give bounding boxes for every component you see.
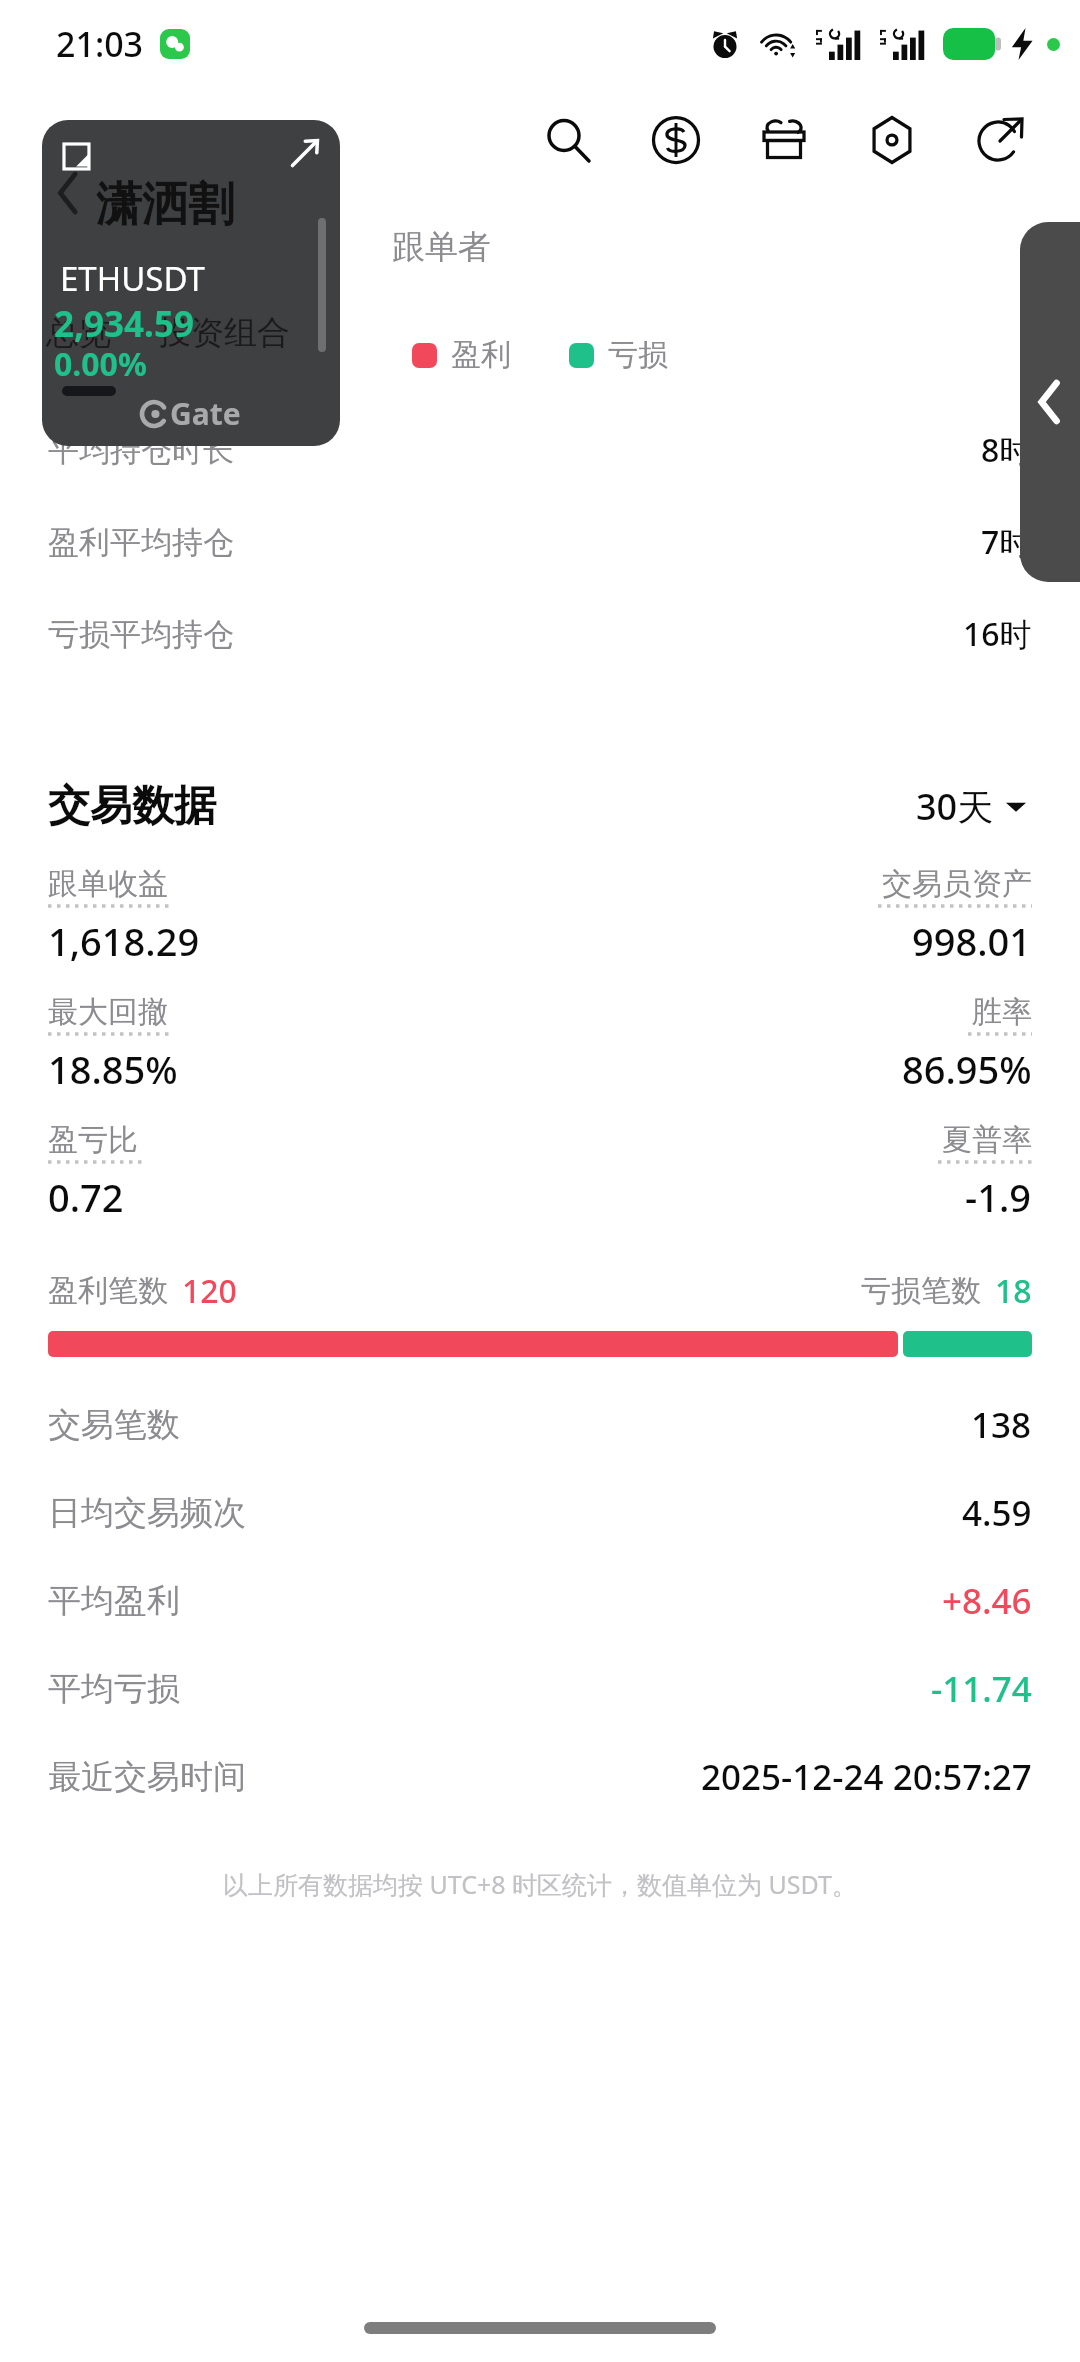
button[interactable]: 盈亏比: [48, 1121, 540, 1223]
staticText: 120: [182, 1269, 237, 1313]
staticText: +8.46: [942, 1577, 1032, 1625]
staticText: 8时: [981, 428, 1032, 472]
button[interactable]: Search: [514, 88, 622, 192]
staticText: 交易笔数: [48, 1404, 180, 1446]
staticText: 平均持仓时长: [48, 431, 234, 470]
staticText: 1,618.29: [48, 915, 200, 967]
button[interactable]: Share: [946, 88, 1054, 192]
staticText: 最近交易时间: [48, 1756, 246, 1798]
staticText: 日均交易频次: [48, 1492, 246, 1534]
staticText: 2025-12-24 20:57:27: [701, 1753, 1032, 1801]
button[interactable]: 交易员资产: [540, 865, 1032, 967]
staticText: 投资组合: [186, 226, 318, 268]
staticText: 交易数据: [48, 780, 216, 833]
staticText: 0.00%: [54, 342, 147, 386]
staticText: 总览: [46, 312, 112, 354]
staticText: 交易员资产: [882, 865, 1032, 903]
button[interactable]: 跟单者: [386, 220, 497, 274]
staticText: 21:03: [56, 21, 144, 67]
staticText: 以上所有数据均按 UTC+8 时区统计，数值单位为 USDT。: [0, 1867, 1080, 1901]
staticText: -11.74: [931, 1665, 1032, 1713]
button[interactable]: Rewards: [622, 88, 730, 192]
staticText: 86.95%: [902, 1043, 1032, 1095]
staticText: 4.59: [962, 1489, 1032, 1537]
staticText: 138: [971, 1401, 1032, 1449]
staticText: 2,934.59: [54, 300, 194, 348]
staticText: 平均盈利: [48, 1580, 180, 1622]
staticText: -1.9: [965, 1171, 1032, 1223]
button[interactable]: 亏损平均持仓: [0, 588, 1080, 680]
button[interactable]: 夏普率: [540, 1121, 1032, 1223]
button[interactable]: 平均持仓时长: [0, 404, 1080, 496]
button[interactable]: 平均盈利: [0, 1557, 1080, 1645]
button[interactable]: Expand panel: [1020, 222, 1080, 582]
staticText: 盈亏比: [48, 1121, 138, 1159]
button[interactable]: 交易笔数: [0, 1381, 1080, 1469]
staticText: 跟单收益: [48, 865, 168, 903]
staticText: 18: [995, 1269, 1032, 1313]
button[interactable]: Settings: [838, 88, 946, 192]
staticText: 潇洒割: [96, 176, 234, 234]
staticText: 总览: [46, 226, 112, 268]
button[interactable]: 跟单收益: [48, 865, 540, 967]
staticText: 盈利: [451, 336, 511, 374]
button[interactable]: 盈利平均持仓: [0, 496, 1080, 588]
staticText: 盈利笔数: [48, 1272, 168, 1310]
button[interactable]: 平均亏损: [0, 1645, 1080, 1733]
staticText: 平均亏损: [48, 1668, 180, 1710]
staticText: Gate: [170, 393, 241, 434]
staticText: 30天: [916, 782, 994, 831]
button[interactable]: 日均交易频次: [0, 1469, 1080, 1557]
staticText: 最大回撤: [48, 993, 168, 1031]
staticText: 跟单者: [392, 226, 491, 268]
button[interactable]: Gift: [730, 88, 838, 192]
staticText: 盈利平均持仓: [48, 523, 234, 562]
button[interactable]: 30天: [910, 776, 1032, 837]
staticText: 18.85%: [48, 1043, 178, 1095]
staticText: ETHUSDT: [60, 256, 205, 301]
button[interactable]: 投资组合: [180, 220, 324, 274]
staticText: 投资组合: [158, 312, 290, 354]
staticText: 16时: [963, 612, 1032, 656]
button[interactable]: Floating window ETHUSDT: [42, 120, 340, 446]
staticText: 亏损笔数: [861, 1272, 981, 1310]
button[interactable]: 胜率: [540, 993, 1032, 1095]
staticText: 夏普率: [942, 1121, 1032, 1159]
staticText: 7时: [981, 520, 1032, 564]
staticText: 0.72: [48, 1171, 124, 1223]
staticText: 亏损: [608, 336, 668, 374]
button[interactable]: 最大回撤: [48, 993, 540, 1095]
staticText: 亏损平均持仓: [48, 615, 234, 654]
button[interactable]: 总览: [40, 220, 118, 274]
staticText: 胜率: [972, 993, 1032, 1031]
button[interactable]: 最近交易时间: [0, 1733, 1080, 1821]
staticText: 998.01: [912, 915, 1032, 967]
